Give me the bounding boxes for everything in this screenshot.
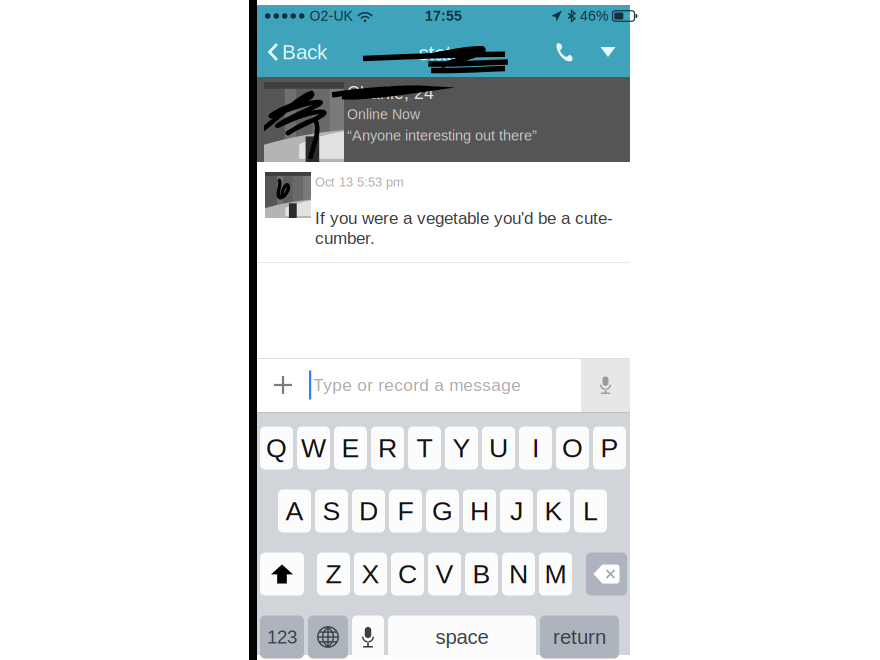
button[interactable]: B — [465, 552, 498, 595]
button[interactable]: Call — [542, 27, 586, 77]
staticText: G — [432, 496, 453, 526]
button[interactable]: More options — [586, 27, 630, 77]
button[interactable]: H — [463, 489, 496, 532]
staticText: 46% — [580, 8, 608, 24]
staticText: U — [489, 433, 508, 463]
button[interactable]: V — [428, 552, 461, 595]
button[interactable]: G — [426, 489, 459, 532]
staticText: O — [562, 433, 583, 463]
staticText: C — [398, 559, 417, 589]
staticText: space — [435, 626, 488, 648]
staticText: “Anyone interesting out there” — [347, 127, 537, 144]
staticText: return — [553, 626, 606, 648]
staticText: F — [397, 496, 413, 526]
button[interactable]: O — [556, 426, 589, 469]
button[interactable]: C — [391, 552, 424, 595]
staticText: E — [341, 433, 359, 463]
button[interactable]: D — [352, 489, 385, 532]
button[interactable]: 123 — [260, 615, 304, 658]
staticText: J — [510, 496, 523, 526]
button[interactable]: Z — [317, 552, 350, 595]
staticText: K — [544, 496, 562, 526]
staticText: 17:55 — [425, 8, 462, 24]
staticText: I — [532, 433, 539, 463]
staticText: Oct 13 5:53 pm — [315, 175, 404, 189]
staticText: Type or record a message — [313, 375, 521, 395]
staticText: Online Now — [347, 107, 420, 122]
button[interactable]: F — [389, 489, 422, 532]
button[interactable]: T — [408, 426, 441, 469]
button[interactable]: U — [482, 426, 515, 469]
staticText: D — [359, 496, 378, 526]
button[interactable]: Charlie, 24 — [257, 77, 630, 162]
staticText: R — [378, 433, 397, 463]
button[interactable]: Change keyboard — [308, 615, 348, 658]
button[interactable]: E — [334, 426, 367, 469]
staticText: cumber. — [315, 228, 375, 248]
staticText: M — [544, 559, 566, 589]
staticText: Back — [282, 40, 327, 64]
staticText: status — [418, 41, 472, 65]
staticText: H — [470, 496, 489, 526]
button[interactable]: M — [539, 552, 572, 595]
staticText: L — [583, 496, 598, 526]
staticText: T — [416, 433, 432, 463]
button[interactable]: R — [371, 426, 404, 469]
staticText: A — [285, 496, 303, 526]
button[interactable]: Record voice message — [581, 358, 630, 412]
staticText: O2-UK — [309, 8, 352, 24]
button[interactable]: Dictation — [352, 615, 384, 658]
staticText: N — [509, 559, 528, 589]
button[interactable]: Shift — [260, 552, 304, 595]
staticText: Y — [452, 433, 470, 463]
staticText: Q — [266, 433, 287, 463]
button[interactable]: J — [500, 489, 533, 532]
staticText: Charlie, 24 — [347, 83, 434, 103]
staticText: P — [600, 433, 618, 463]
button[interactable]: X — [354, 552, 387, 595]
button[interactable]: S — [315, 489, 348, 532]
staticText: S — [322, 496, 340, 526]
staticText: B — [472, 559, 490, 589]
button[interactable]: Delete — [586, 552, 627, 595]
button[interactable]: A — [278, 489, 311, 532]
button[interactable]: return — [540, 615, 619, 658]
button[interactable]: Back — [257, 27, 335, 77]
staticText: W — [301, 433, 326, 463]
staticText: Z — [325, 559, 341, 589]
button[interactable]: L — [574, 489, 607, 532]
button[interactable]: N — [502, 552, 535, 595]
button[interactable]: Add attachment — [257, 358, 309, 412]
button[interactable]: Q — [260, 426, 293, 469]
staticText: X — [361, 559, 379, 589]
button[interactable]: Y — [445, 426, 478, 469]
button[interactable]: P — [593, 426, 626, 469]
button[interactable]: I — [519, 426, 552, 469]
button[interactable]: space — [388, 615, 536, 658]
button[interactable]: K — [537, 489, 570, 532]
button[interactable]: W — [297, 426, 330, 469]
staticText: V — [435, 559, 453, 589]
staticText: 123 — [267, 627, 297, 647]
staticText: If you were a vegetable you'd be a cute- — [315, 208, 613, 228]
